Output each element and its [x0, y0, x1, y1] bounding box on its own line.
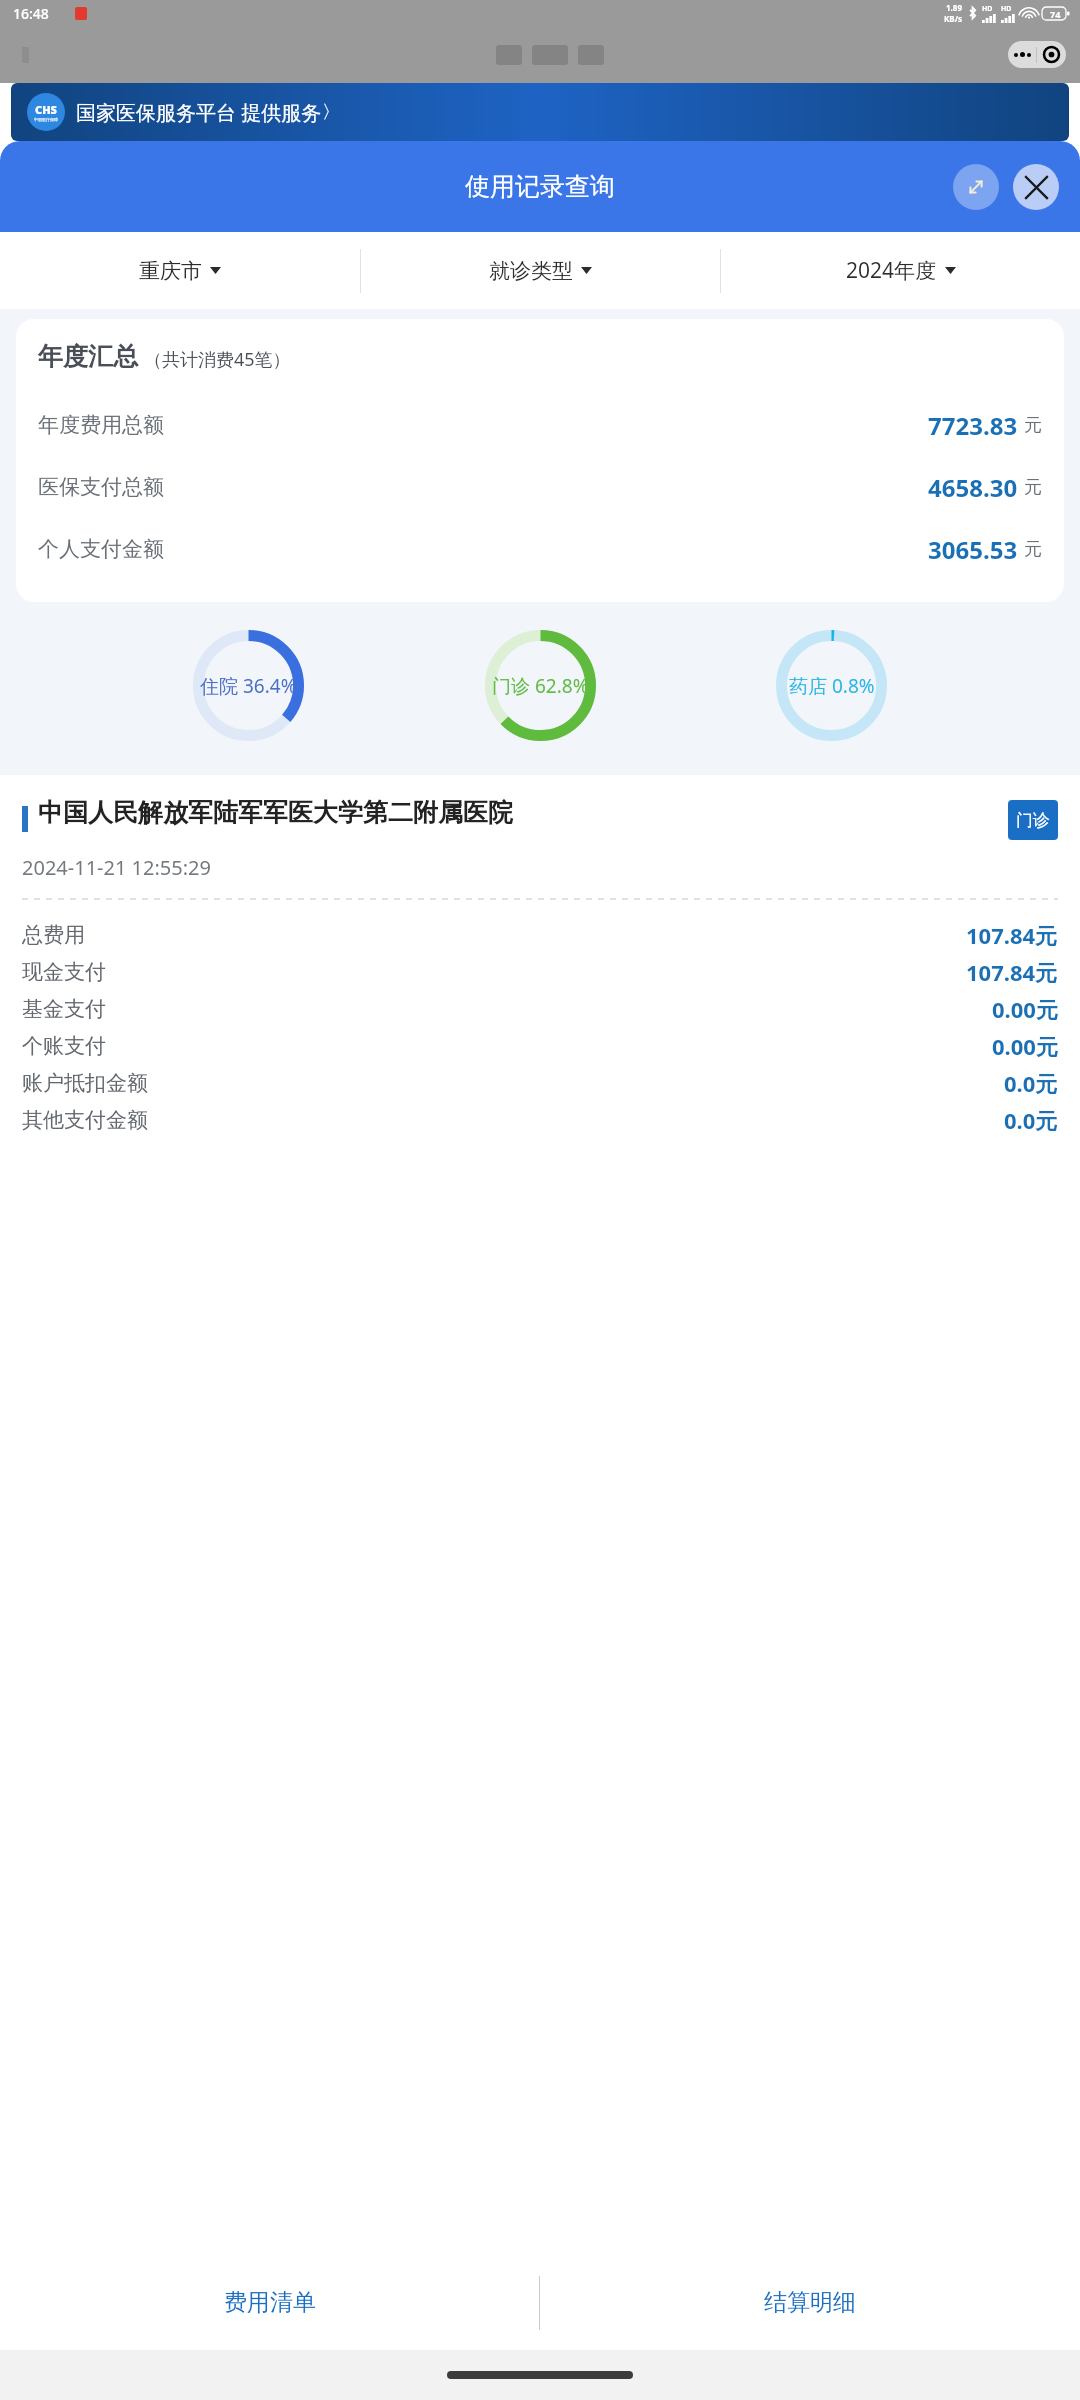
staticText: 3065.53	[928, 533, 1018, 566]
staticText: 使用记录查询	[465, 171, 615, 202]
button[interactable]: 费用清单	[0, 2255, 539, 2350]
staticText: 74	[1050, 8, 1061, 20]
staticText: 0.0元	[1004, 1068, 1058, 1098]
staticText: （共计消费45笔）	[144, 347, 291, 372]
staticText: 16:48	[13, 4, 49, 23]
staticText: 107.84元	[966, 957, 1058, 987]
staticText: 现金支付	[22, 959, 106, 985]
button[interactable]: 结算明细	[540, 2255, 1080, 2350]
staticText: 医保支付总额	[38, 474, 164, 500]
staticText: 药店 0.8%	[789, 673, 875, 699]
staticText: HD	[1001, 4, 1012, 14]
staticText: 其他支付金额	[22, 1107, 148, 1133]
staticText: 年度汇总	[38, 341, 138, 372]
staticText: 107.84元	[966, 920, 1058, 950]
staticText: 基金支付	[22, 996, 106, 1022]
button[interactable]: More	[1008, 52, 1036, 57]
button[interactable]: 重庆市	[0, 232, 360, 309]
staticText: 总费用	[22, 922, 85, 948]
button[interactable]: Close	[1013, 164, 1059, 210]
staticText: 7723.83	[928, 409, 1018, 442]
staticText: 0.00元	[992, 1031, 1058, 1061]
staticText: 中国人民解放军陆军军医大学第二附属医院	[38, 797, 998, 828]
staticText: 费用清单	[224, 2288, 316, 2317]
staticText: 年度费用总额	[38, 412, 164, 438]
staticText: 2024-11-21 12:55:29	[22, 854, 211, 881]
staticText: 个账支付	[22, 1033, 106, 1059]
staticText: CHS	[35, 102, 57, 117]
staticText: 2024年度	[846, 256, 937, 285]
button[interactable]: CHS	[11, 83, 1069, 141]
staticText: 结算明细	[764, 2288, 856, 2317]
button[interactable]: Expand	[953, 164, 999, 210]
staticText: 门诊 62.8%	[492, 673, 589, 699]
button[interactable]: Close mini program	[1037, 47, 1066, 62]
button[interactable]: 中国人民解放军陆军军医大学第二附属医院	[22, 797, 1058, 840]
staticText: 就诊类型	[489, 258, 573, 284]
staticText: 个人支付金额	[38, 536, 164, 562]
staticText: 重庆市	[139, 258, 202, 284]
staticText: 元	[1024, 414, 1042, 437]
staticText: 4658.30	[928, 471, 1018, 504]
button[interactable]: 就诊类型	[361, 232, 720, 309]
staticText: 门诊	[1016, 810, 1050, 831]
staticText: 1.89	[946, 2, 962, 13]
staticText: 元	[1024, 538, 1042, 561]
staticText: 中国医疗保障	[34, 117, 58, 122]
staticText: 住院 36.4%	[200, 673, 297, 699]
staticText: 〉	[322, 101, 340, 124]
staticText: 国家医保服务平台 提供服务	[76, 99, 322, 126]
staticText: HD	[982, 4, 993, 14]
staticText: 元	[1024, 476, 1042, 499]
staticText: KB/s	[944, 13, 962, 24]
staticText: 0.00元	[992, 994, 1058, 1024]
button[interactable]: 2024年度	[721, 232, 1080, 309]
staticText: 账户抵扣金额	[22, 1070, 148, 1096]
staticText: 0.0元	[1004, 1105, 1058, 1135]
